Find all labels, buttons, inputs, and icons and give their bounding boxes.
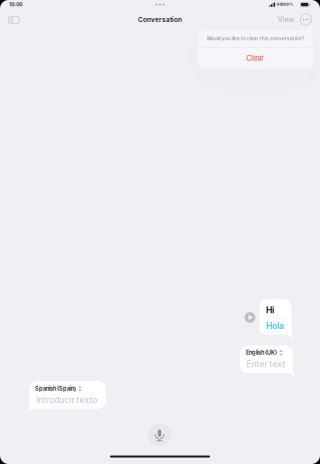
staticText: View [277,15,294,24]
button[interactable]: Spanish (Spain) [29,381,106,409]
button[interactable]: Play translation [241,309,258,326]
staticText: English (UK) [246,349,277,356]
button[interactable]: Clear [198,48,313,69]
button[interactable]: More options [297,10,315,28]
button[interactable]: Record audio [144,420,174,450]
button[interactable]: Show Sidebar [3,11,24,29]
staticText: 100% [281,2,293,7]
staticText: Enter text [246,359,285,369]
staticText: Clear [246,54,264,63]
staticText: Hi [266,305,274,315]
staticText: Conversation [138,15,182,23]
staticText: Would you like to clear this conversatio… [207,36,304,41]
staticText: Hola [266,321,284,331]
button[interactable]: View [273,11,298,28]
staticText: Spanish (Spain) [35,385,76,392]
staticText: 10:00 [9,1,22,7]
staticText: 4G [276,2,282,7]
button[interactable]: English (UK) [240,345,293,373]
staticText: Introducir texto [36,395,97,405]
